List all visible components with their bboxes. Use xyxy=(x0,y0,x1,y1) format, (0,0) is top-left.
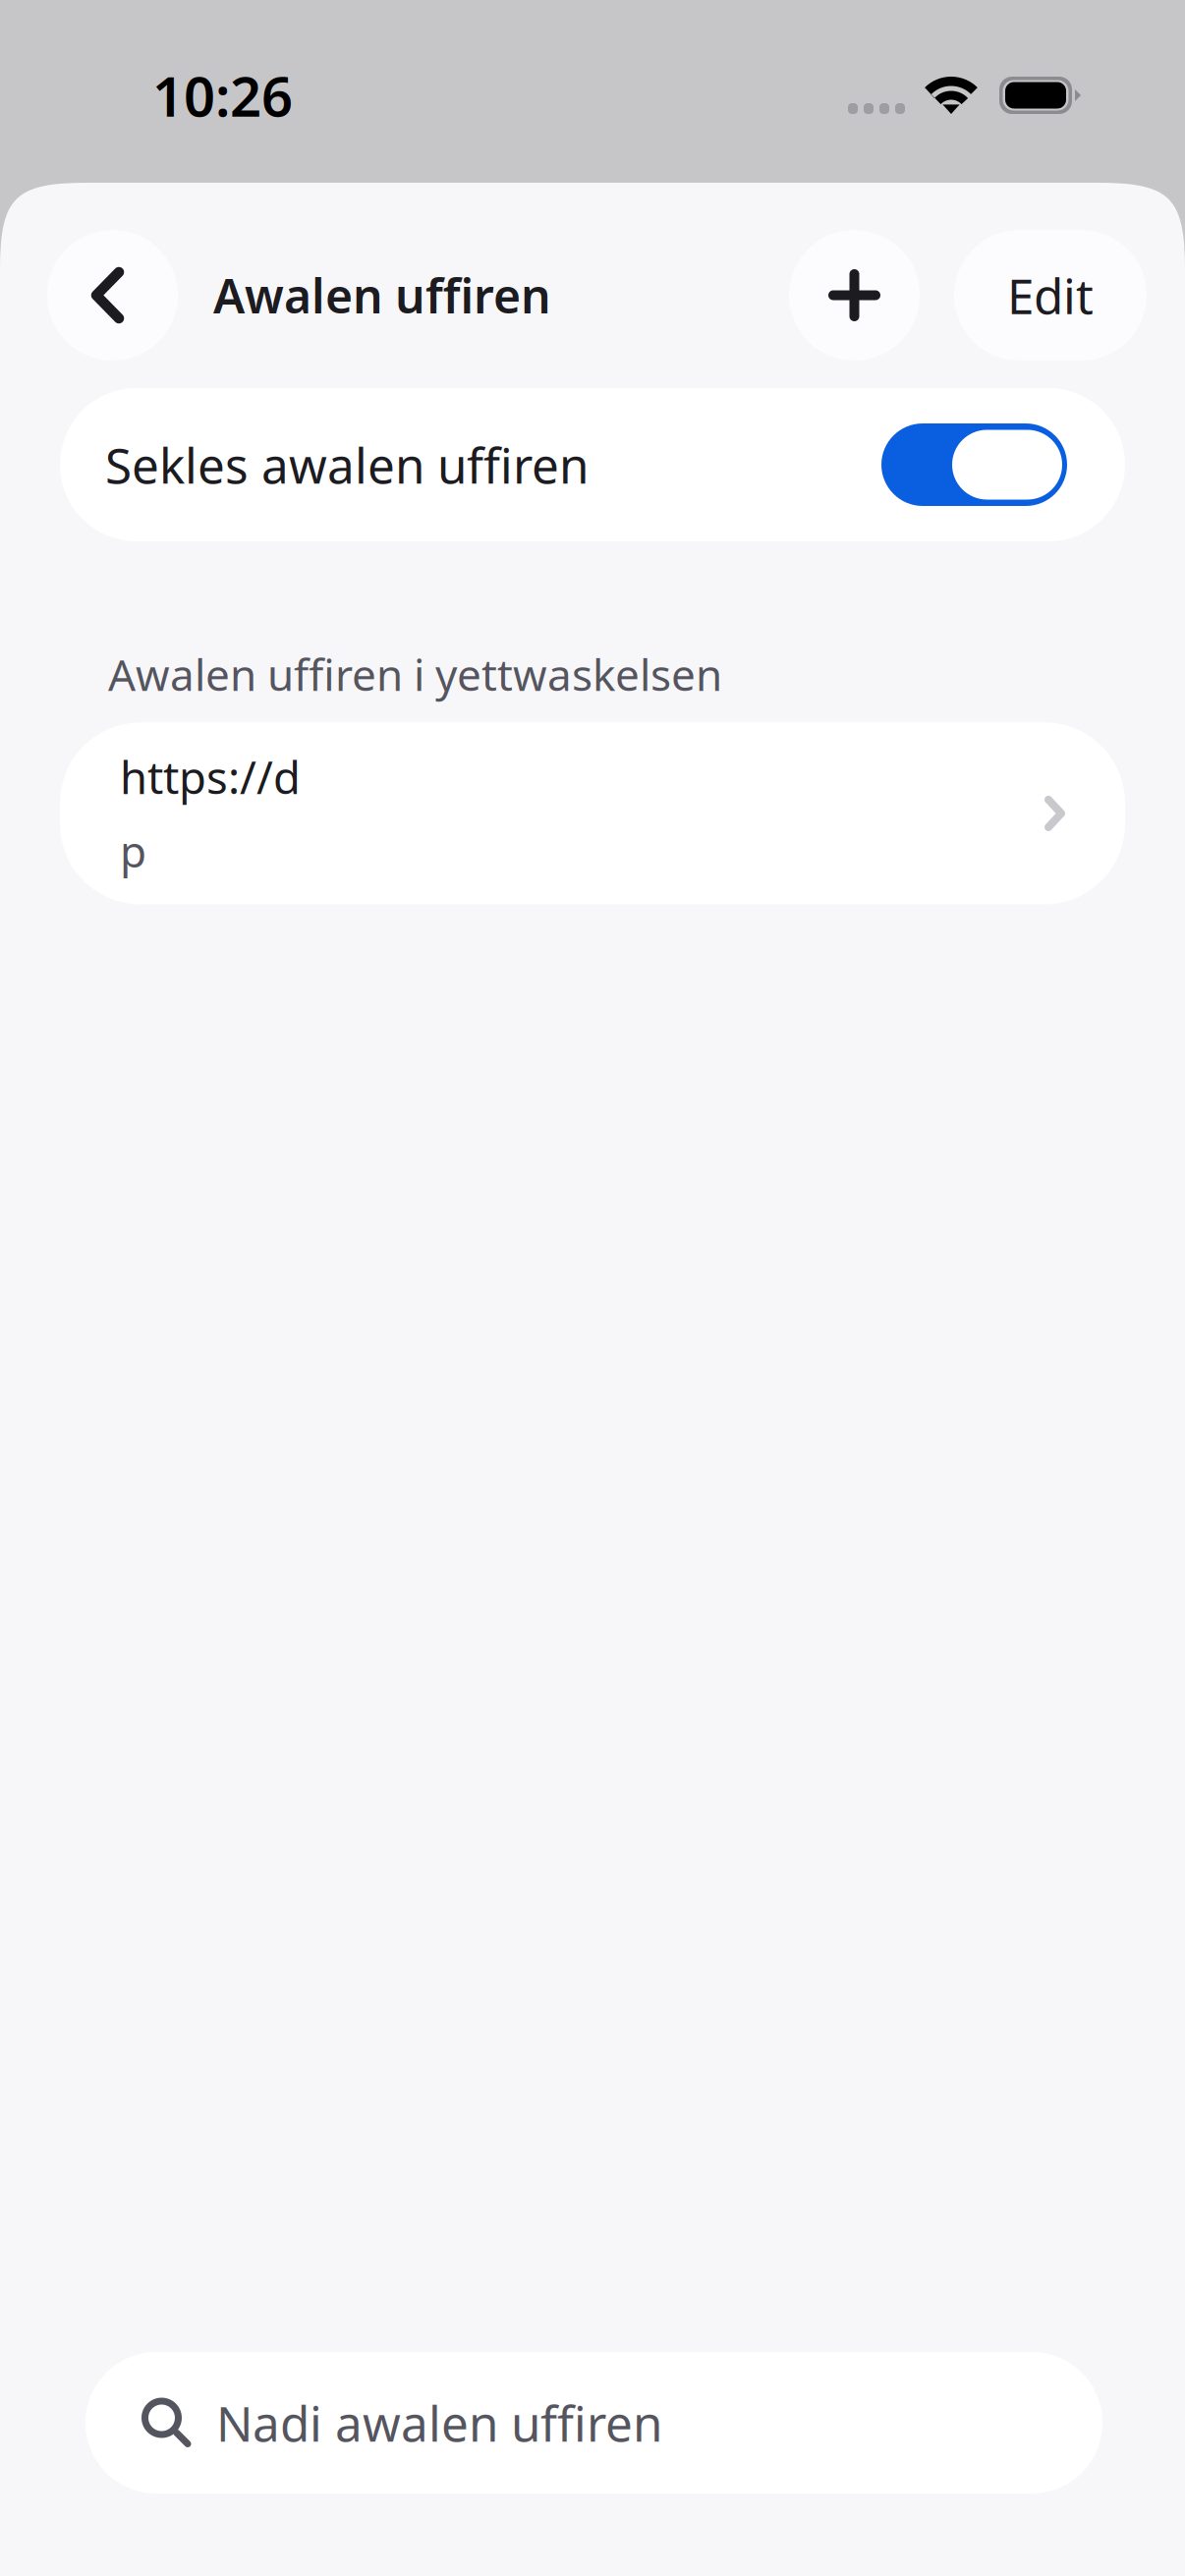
button[interactable]: Sekles awalen uffiren xyxy=(881,423,1067,506)
staticText: Nadi awalen uffiren xyxy=(216,2391,662,2455)
staticText: Awalen uffiren i yettwaskelsen xyxy=(108,645,722,703)
staticText: 10:26 xyxy=(152,59,293,132)
button[interactable]: Add xyxy=(789,230,920,361)
staticText: https://d xyxy=(120,747,301,806)
button[interactable]: Back xyxy=(47,230,178,361)
staticText: p xyxy=(120,822,146,879)
button[interactable]: https://d xyxy=(0,722,1185,904)
staticText: Sekles awalen uffiren xyxy=(105,432,589,497)
staticText: Awalen uffiren xyxy=(213,264,551,326)
button[interactable]: Edit xyxy=(954,230,1147,361)
staticText: Edit xyxy=(1007,263,1094,327)
button[interactable]: Sekles awalen uffiren xyxy=(0,388,1185,541)
button[interactable]: Nadi awalen uffiren xyxy=(0,2352,1185,2493)
